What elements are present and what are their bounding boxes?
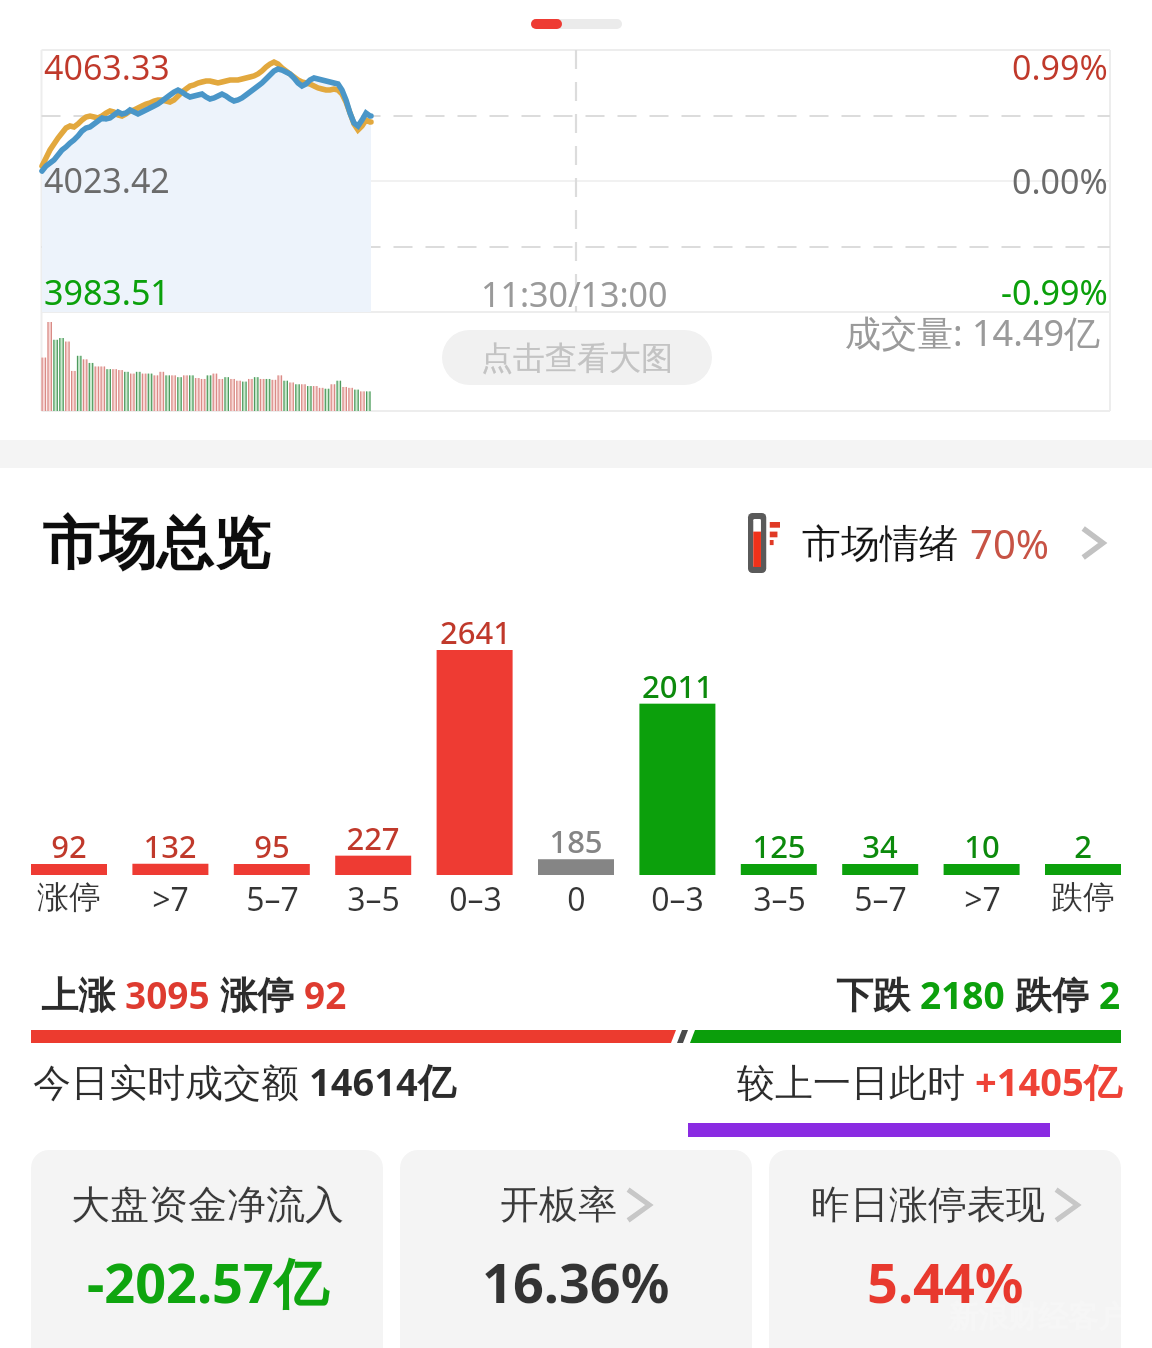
staticText: 5.44% xyxy=(867,1245,1024,1319)
staticText: 2 xyxy=(1099,969,1121,1019)
staticText: 跌停 xyxy=(1051,877,1115,917)
staticText: 较上一日此时 xyxy=(737,1055,975,1107)
staticText: 92 xyxy=(304,969,347,1019)
staticText: 0 xyxy=(567,877,586,921)
staticText: 5–7 xyxy=(854,877,907,921)
staticText: 4023.42 xyxy=(44,157,170,203)
staticText: 涨停 xyxy=(37,877,101,917)
button[interactable]: 昨日涨停表现 xyxy=(769,1150,1121,1348)
staticText: 0.99% xyxy=(1012,44,1108,90)
staticText: 3–5 xyxy=(347,877,400,921)
staticText: 70% xyxy=(970,516,1049,570)
staticText: 大盘资金净流入 xyxy=(71,1180,344,1229)
staticText: 34 xyxy=(862,825,898,867)
staticText: 125 xyxy=(752,825,806,867)
staticText: >7 xyxy=(964,877,1001,921)
staticText: 市场情绪 xyxy=(802,519,958,568)
staticText: >7 xyxy=(152,877,189,921)
staticText: 昨日涨停表现 xyxy=(811,1180,1045,1229)
staticText: 2 xyxy=(1074,825,1092,867)
staticText: 3–5 xyxy=(753,877,806,921)
staticText: 2641 xyxy=(440,611,511,653)
staticText: 3095 xyxy=(125,969,220,1019)
button[interactable]: 开板率 xyxy=(400,1150,752,1348)
staticText: 14614亿 xyxy=(309,1055,456,1107)
button[interactable]: 指数分时图 xyxy=(0,0,1152,440)
staticText: 185 xyxy=(549,820,603,862)
staticText: 0.00% xyxy=(1012,158,1108,204)
staticText: 成交量: 14.49亿 xyxy=(845,308,1101,357)
staticText: 92 xyxy=(51,825,87,867)
staticText: 0–3 xyxy=(449,877,502,921)
other: 查看市场情绪 xyxy=(1079,521,1107,565)
staticText: 点击查看大图 xyxy=(481,338,673,378)
staticText: 涨停 xyxy=(220,968,304,1019)
staticText: 3983.51 xyxy=(44,269,170,315)
staticText: 下跌 xyxy=(836,968,920,1019)
staticText: +1405亿 xyxy=(975,1055,1122,1107)
staticText: 5–7 xyxy=(246,877,299,921)
staticText: 跌停 xyxy=(1015,968,1099,1019)
button[interactable]: 大盘资金净流入 xyxy=(31,1150,383,1348)
staticText: 10 xyxy=(964,825,1000,867)
staticText: 市场总览 xyxy=(42,508,270,580)
staticText: 2180 xyxy=(920,969,1015,1019)
button[interactable]: 市场情绪 xyxy=(748,513,1107,573)
staticText: 上涨 xyxy=(41,968,125,1019)
staticText: 4063.33 xyxy=(44,44,170,90)
staticText: -202.57亿 xyxy=(87,1245,328,1319)
staticText: 0–3 xyxy=(651,877,704,921)
staticText: -0.99% xyxy=(1001,269,1108,315)
staticText: 11:30/13:00 xyxy=(481,271,668,317)
button[interactable]: 点击查看大图 xyxy=(442,330,712,385)
staticText: 227 xyxy=(346,817,400,859)
staticText: 95 xyxy=(254,825,290,867)
staticText: 2011 xyxy=(642,665,713,707)
staticText: 132 xyxy=(143,825,197,867)
staticText: 开板率 xyxy=(500,1180,617,1229)
staticText: 今日实时成交额 xyxy=(33,1055,309,1107)
staticText: 新浪财经客户端 xyxy=(948,1298,1152,1336)
staticText: 16.36% xyxy=(482,1245,670,1319)
